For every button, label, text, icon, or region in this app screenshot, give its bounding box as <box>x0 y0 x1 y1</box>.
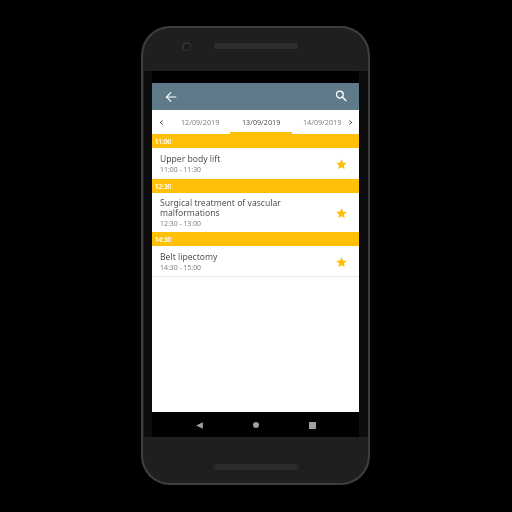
button[interactable]: Surgical treatment of vascular malformat… <box>152 193 359 232</box>
button[interactable]: Favourite <box>323 193 359 232</box>
button[interactable]: 13/09/2019 <box>231 110 291 134</box>
staticText: 14/09/2019 <box>303 117 342 127</box>
button[interactable]: Next day <box>344 110 356 134</box>
button[interactable]: Recents <box>302 415 322 435</box>
staticText: Upper body lift <box>160 153 221 165</box>
button[interactable]: Favourite <box>323 148 359 179</box>
staticText: 12:30 - 13:00 <box>160 219 202 228</box>
button[interactable]: 14/09/2019 <box>292 110 352 134</box>
button[interactable]: Home <box>246 415 266 435</box>
button[interactable]: Search <box>329 83 354 110</box>
staticText: Belt lipectomy <box>160 251 218 263</box>
button[interactable]: Back <box>158 83 183 110</box>
staticText: 14:30 - 15:00 <box>160 263 202 272</box>
button[interactable]: Favourite <box>323 246 359 276</box>
button[interactable]: Back <box>189 415 209 435</box>
button[interactable]: Previous day <box>155 110 167 134</box>
staticText: 11:00 <box>155 137 172 146</box>
staticText: Surgical treatment of vascular malformat… <box>160 197 319 219</box>
staticText: 12/09/2019 <box>181 117 220 127</box>
staticText: 14:30 <box>155 235 172 244</box>
button[interactable]: 12/09/2019 <box>170 110 230 134</box>
staticText: 11:00 - 11:30 <box>160 165 202 174</box>
staticText: 12:30 <box>155 182 172 191</box>
button[interactable]: Upper body lift <box>152 148 359 179</box>
button[interactable]: Belt lipectomy <box>152 246 359 276</box>
staticText: 13/09/2019 <box>242 117 281 127</box>
